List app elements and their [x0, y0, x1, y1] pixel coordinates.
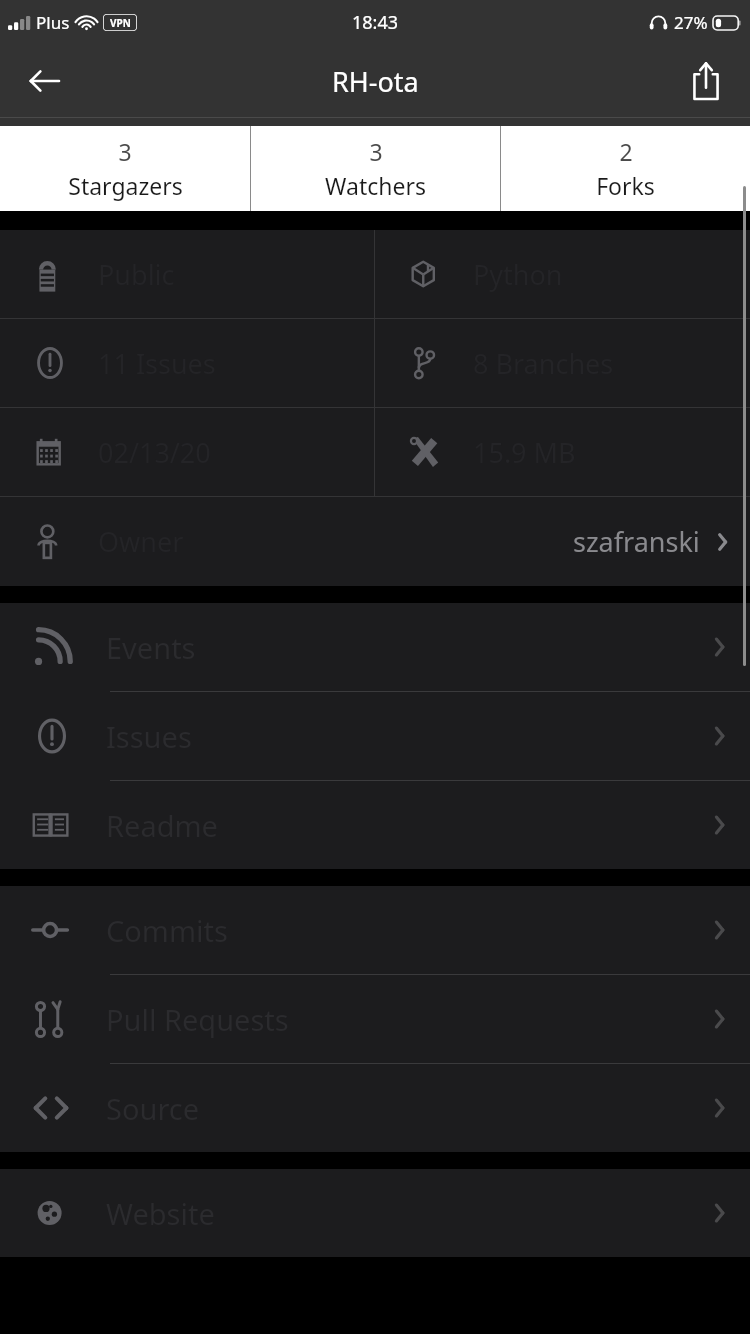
button[interactable]: Commits — [0, 886, 750, 974]
staticText: 3 — [369, 136, 383, 167]
button[interactable]: Back — [12, 49, 76, 113]
button[interactable]: 2 — [501, 126, 750, 211]
staticText: Source — [106, 1089, 200, 1128]
button[interactable]: Share — [674, 49, 738, 113]
button[interactable]: Events — [0, 603, 750, 691]
staticText: 27% — [674, 11, 708, 34]
staticText: Events — [106, 628, 196, 667]
staticText: Watchers — [325, 170, 426, 201]
button[interactable]: Owner — [0, 497, 750, 586]
staticText: Stargazers — [68, 170, 183, 201]
button[interactable]: 11 Issues — [0, 319, 374, 407]
staticText: 3 — [118, 136, 132, 167]
button[interactable]: Pull Requests — [0, 975, 750, 1063]
button[interactable]: Readme — [0, 781, 750, 869]
button[interactable]: Source — [0, 1064, 750, 1152]
button[interactable]: 02/13/20 — [0, 408, 374, 496]
staticText: RH-ota — [332, 63, 419, 100]
staticText: Commits — [106, 911, 228, 950]
button[interactable]: Python — [375, 230, 750, 318]
staticText: Pull Requests — [106, 1000, 289, 1039]
button[interactable]: Public — [0, 230, 374, 318]
button[interactable]: 8 Branches — [375, 319, 750, 407]
button[interactable]: Website — [0, 1169, 750, 1257]
button[interactable]: 3 — [251, 126, 500, 211]
staticText: Forks — [596, 170, 655, 201]
staticText: Website — [106, 1194, 215, 1233]
button[interactable]: Issues — [0, 692, 750, 780]
staticText: szafranski — [573, 523, 700, 560]
button[interactable]: 15.9 MB — [375, 408, 750, 496]
staticText: Plus — [36, 11, 70, 34]
button[interactable]: 3 — [0, 126, 250, 211]
staticText: Issues — [106, 717, 192, 756]
staticText: VPN — [110, 16, 131, 30]
staticText: 2 — [619, 136, 633, 167]
staticText: 18:43 — [352, 10, 399, 35]
staticText: Readme — [106, 806, 218, 845]
